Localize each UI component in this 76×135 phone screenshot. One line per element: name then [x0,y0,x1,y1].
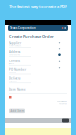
button[interactable]: Share [62,118,69,122]
staticText: Address [9,50,20,54]
staticText: 18 Harbour Rd [9,54,20,56]
staticText: Item Name [9,88,26,91]
staticText: Acme Trading Co. [9,45,21,47]
staticText: J. Rivera [9,63,14,64]
staticText: Supplier [9,41,21,45]
staticText: The fastest way to create a PDF [9,4,67,9]
staticText: Total 44.00 [59,103,67,105]
staticText: Texas Corporation [10,26,36,30]
staticText: PO-10249 [9,71,16,73]
button[interactable]: Add Item [9,109,67,113]
staticText: Add Item [10,109,23,113]
staticText: Delivery [9,77,20,80]
staticText: Contact [9,59,20,62]
staticText: PO Number [9,68,26,71]
staticText: Sub Total 40.00 [57,100,67,102]
staticText: Create Purchase Order [9,34,54,39]
button[interactable]: Texas Corporation [8,25,68,31]
staticText: 24 Jan 2024 [9,80,17,82]
